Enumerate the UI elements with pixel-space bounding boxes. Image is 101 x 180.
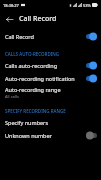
staticText: Call Record: [5, 33, 34, 40]
staticText: Auto-recording range: [5, 86, 61, 93]
button[interactable]: Back: [3, 13, 15, 25]
staticText: 53%: [83, 3, 91, 8]
staticText: Unknown number: [5, 132, 52, 139]
button[interactable]: Specify numbers: [0, 116, 101, 129]
staticText: Specify numbers: [5, 119, 49, 126]
staticText: All calls: [5, 94, 19, 99]
button[interactable]: Toggle: [86, 131, 97, 140]
staticText: Auto-recording notification: [5, 75, 75, 82]
button[interactable]: Toggle: [86, 61, 97, 70]
staticText: CALLS AUTO-RECORDING: [5, 51, 60, 57]
staticText: 18:38:27: [3, 3, 19, 8]
button[interactable]: Auto-recording range: [0, 85, 101, 100]
button[interactable]: Call Record: [0, 30, 101, 43]
button[interactable]: Toggle: [86, 74, 97, 83]
button[interactable]: Auto-recording notification: [0, 72, 101, 85]
button[interactable]: Calls auto-recording: [0, 59, 101, 72]
button[interactable]: Unknown number: [0, 129, 101, 142]
staticText: SPECIFY RECORDING RANGE: [5, 108, 66, 114]
staticText: Call Record: [19, 14, 57, 24]
button[interactable]: Toggle: [86, 32, 97, 41]
staticText: Calls auto-recording: [5, 62, 58, 69]
